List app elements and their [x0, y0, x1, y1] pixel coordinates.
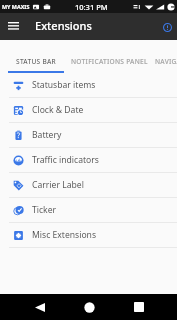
button[interactable]: Back	[27, 294, 53, 320]
staticText: Extensions	[35, 18, 92, 33]
staticText: Clock & Date	[32, 104, 84, 116]
staticText: NAVIGATION BAR	[155, 57, 177, 66]
staticText: Traffic indicators	[32, 154, 99, 166]
staticText: STATUS BAR	[16, 57, 56, 66]
button[interactable]: Statusbar items	[0, 73, 177, 97]
staticText: Statusbar items	[32, 79, 96, 91]
button[interactable]: Open navigation menu	[0, 13, 27, 40]
button[interactable]: NOTIFICATIONS PANEL	[64, 40, 155, 73]
staticText: Carrier Label	[32, 179, 84, 191]
button[interactable]: Ticker	[0, 198, 177, 222]
button[interactable]: Carrier Label	[0, 173, 177, 197]
staticText: MY MAXIS	[2, 3, 30, 10]
staticText: 10:31 PM	[75, 2, 108, 12]
staticText: Ticker	[32, 204, 57, 216]
button[interactable]: Traffic indicators	[0, 148, 177, 172]
staticText: Misc Extensions	[32, 229, 97, 241]
button[interactable]: Misc Extensions	[0, 223, 177, 247]
staticText: Battery	[32, 129, 62, 141]
button[interactable]: Clock & Date	[0, 98, 177, 122]
button[interactable]: STATUS BAR	[8, 40, 64, 73]
button[interactable]: Home	[76, 294, 102, 320]
button[interactable]: Battery	[0, 123, 177, 147]
button[interactable]: Information	[157, 17, 177, 37]
button[interactable]: Recent apps	[126, 294, 152, 320]
staticText: NOTIFICATIONS PANEL	[71, 57, 148, 66]
button[interactable]: NAVIGATION BAR	[155, 40, 177, 73]
